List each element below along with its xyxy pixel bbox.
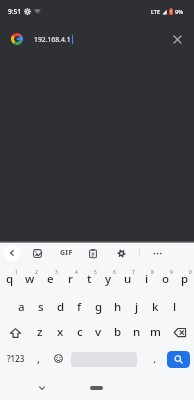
button[interactable]: p bbox=[175, 268, 194, 293]
button[interactable]: l bbox=[165, 295, 184, 320]
staticText: z bbox=[37, 324, 43, 340]
staticText: 8 bbox=[151, 269, 154, 276]
button[interactable]: Clear bbox=[168, 30, 186, 48]
staticText: u bbox=[124, 271, 132, 287]
staticText: h bbox=[114, 299, 122, 315]
staticText: q bbox=[6, 271, 14, 287]
button[interactable]: e bbox=[40, 268, 60, 293]
button[interactable]: n bbox=[127, 320, 146, 345]
staticText: l bbox=[173, 299, 177, 315]
button[interactable]: r bbox=[60, 268, 80, 293]
staticText: GIF bbox=[60, 248, 73, 258]
staticText: 5 bbox=[94, 269, 97, 276]
button[interactable]: j bbox=[127, 295, 146, 320]
staticText: k bbox=[152, 299, 159, 315]
staticText: , bbox=[37, 351, 41, 366]
staticText: d bbox=[57, 299, 65, 315]
staticText: x bbox=[57, 324, 64, 340]
staticText: 4 bbox=[75, 269, 78, 276]
button[interactable]: m bbox=[146, 320, 165, 345]
staticText: j bbox=[135, 299, 139, 315]
button[interactable]: z bbox=[30, 320, 50, 345]
button[interactable]: GIF bbox=[58, 245, 74, 261]
staticText: ?123 bbox=[7, 353, 25, 364]
button[interactable]: Emoji bbox=[47, 345, 69, 371]
staticText: 6 bbox=[113, 269, 116, 276]
button[interactable]: k bbox=[146, 295, 165, 320]
button[interactable]: Settings bbox=[113, 245, 129, 261]
staticText: 7 bbox=[132, 269, 135, 276]
staticText: 9% bbox=[175, 8, 183, 15]
button[interactable]: c bbox=[70, 320, 89, 345]
button[interactable]: s bbox=[31, 295, 51, 320]
button[interactable]: Back bbox=[4, 245, 20, 261]
staticText: g bbox=[95, 299, 103, 315]
staticText: w bbox=[25, 271, 35, 287]
button[interactable]: v bbox=[89, 320, 108, 345]
button[interactable]: t bbox=[80, 268, 99, 293]
button[interactable]: ?123 bbox=[0, 344, 31, 370]
button[interactable]: Google bbox=[10, 32, 24, 46]
staticText: e bbox=[47, 271, 54, 287]
staticText: 2 bbox=[35, 269, 38, 276]
button[interactable]: x bbox=[50, 320, 70, 345]
button[interactable]: g bbox=[89, 295, 108, 320]
staticText: 9 bbox=[170, 269, 173, 276]
staticText: 1 bbox=[15, 269, 18, 276]
button[interactable]: a bbox=[11, 295, 31, 320]
button[interactable]: o bbox=[156, 268, 175, 293]
staticText: y bbox=[105, 271, 112, 287]
staticText: c bbox=[77, 324, 83, 340]
button[interactable]: y bbox=[99, 268, 118, 293]
button[interactable]: f bbox=[70, 295, 89, 320]
staticText: LTE bbox=[151, 8, 160, 15]
staticText: n bbox=[133, 324, 141, 340]
button[interactable]: Clipboard bbox=[85, 245, 101, 261]
button[interactable]: , bbox=[31, 344, 47, 370]
button[interactable]: More options bbox=[149, 245, 165, 261]
staticText: r bbox=[68, 271, 73, 287]
button[interactable]: b bbox=[108, 320, 127, 345]
staticText: v bbox=[95, 324, 102, 340]
button[interactable]: w bbox=[20, 268, 40, 293]
button[interactable]: q bbox=[0, 268, 20, 293]
button[interactable]: d bbox=[51, 295, 70, 320]
staticText: t bbox=[87, 271, 92, 287]
button[interactable]: i bbox=[137, 268, 156, 293]
staticText: s bbox=[38, 299, 44, 315]
staticText: 192.168.4.1 bbox=[34, 35, 71, 44]
staticText: i bbox=[145, 271, 149, 287]
button[interactable]: . bbox=[143, 344, 165, 370]
staticText: 3 bbox=[55, 269, 58, 276]
staticText: b bbox=[114, 324, 122, 340]
button[interactable]: Backspace bbox=[165, 320, 194, 345]
button[interactable]: h bbox=[108, 295, 127, 320]
staticText: m bbox=[150, 324, 161, 340]
button[interactable]: Search bbox=[167, 351, 190, 368]
button[interactable]: Shift bbox=[0, 320, 30, 345]
staticText: p bbox=[181, 271, 189, 287]
button[interactable]: u bbox=[118, 268, 137, 293]
button[interactable]: Hide keyboard bbox=[34, 380, 50, 396]
staticText: o bbox=[162, 271, 170, 287]
staticText: a bbox=[18, 299, 25, 315]
staticText: . bbox=[153, 351, 156, 366]
staticText: 9:51 bbox=[8, 7, 21, 16]
staticText: 0 bbox=[189, 269, 192, 276]
staticText: f bbox=[77, 299, 82, 315]
button[interactable]: Stickers bbox=[29, 245, 45, 261]
